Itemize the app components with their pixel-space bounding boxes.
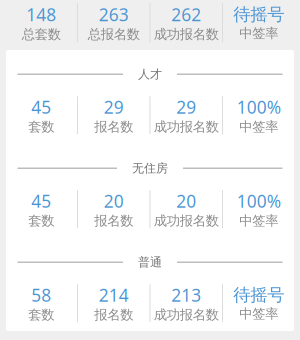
staticText: 总报名数: [88, 26, 140, 42]
staticText: 普通: [138, 255, 162, 269]
staticText: 214: [99, 283, 129, 306]
staticText: 29: [176, 95, 196, 118]
staticText: 报名数: [94, 307, 133, 323]
staticText: 套数: [28, 119, 54, 135]
staticText: 成功报名数: [154, 307, 219, 323]
staticText: 待摇号: [233, 284, 284, 306]
staticText: 148: [26, 3, 56, 26]
staticText: 无住房: [132, 161, 168, 175]
staticText: 中签率: [239, 25, 278, 42]
staticText: 29: [104, 95, 124, 118]
staticText: 人才: [138, 67, 162, 81]
staticText: 中签率: [239, 306, 278, 322]
staticText: 58: [31, 283, 51, 306]
staticText: 45: [31, 95, 51, 118]
staticText: 45: [31, 189, 51, 212]
staticText: 总套数: [22, 26, 61, 42]
staticText: 报名数: [94, 213, 133, 229]
staticText: 成功报名数: [154, 213, 219, 229]
staticText: 中签率: [239, 213, 278, 229]
staticText: 263: [99, 3, 129, 26]
staticText: 20: [104, 189, 124, 212]
staticText: 100%: [237, 189, 281, 212]
staticText: 20: [176, 189, 196, 212]
staticText: 成功报名数: [154, 26, 219, 42]
staticText: 待摇号: [233, 4, 284, 25]
staticText: 报名数: [94, 119, 133, 135]
staticText: 套数: [28, 307, 54, 323]
staticText: 213: [171, 283, 201, 306]
staticText: 100%: [237, 95, 281, 118]
staticText: 套数: [28, 213, 54, 229]
staticText: 262: [171, 3, 201, 26]
staticText: 中签率: [239, 119, 278, 135]
staticText: 成功报名数: [154, 119, 219, 135]
